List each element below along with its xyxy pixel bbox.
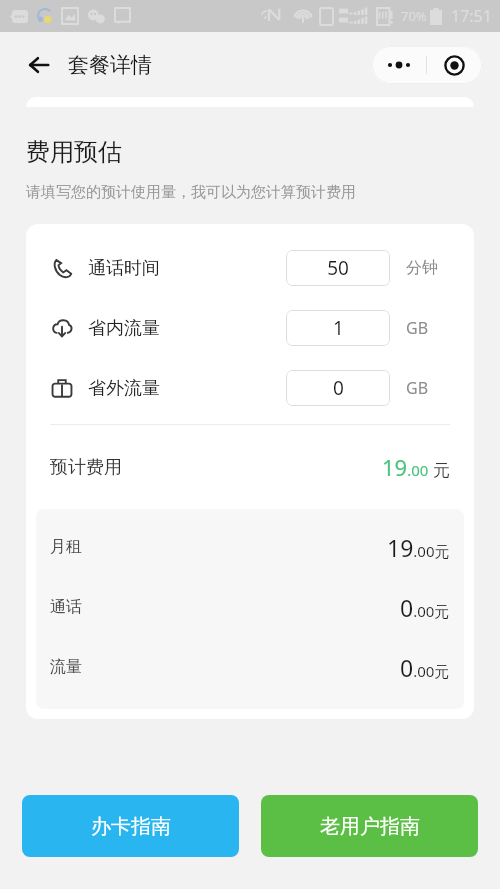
button[interactable]: Back bbox=[20, 46, 58, 84]
button[interactable]: 省外流量 bbox=[50, 358, 450, 418]
button[interactable]: Close mini program bbox=[427, 55, 482, 76]
staticText: 19.00 元 bbox=[382, 452, 450, 482]
staticText: 省内流量 bbox=[88, 317, 160, 340]
staticText: 请填写您的预计使用量，我可以为您计算预计费用 bbox=[26, 183, 356, 202]
staticText: 1 bbox=[333, 315, 344, 341]
staticText: 70% bbox=[401, 7, 427, 25]
staticText: GB bbox=[406, 377, 429, 399]
button[interactable]: 通话时间 bbox=[50, 238, 450, 298]
button[interactable]: More options bbox=[372, 60, 426, 70]
staticText: 套餐详情 bbox=[68, 52, 152, 78]
staticText: 流量 bbox=[50, 657, 82, 677]
staticText: 通话 bbox=[50, 597, 82, 617]
staticText: 分钟 bbox=[406, 258, 438, 278]
button[interactable]: 老用户指南 bbox=[261, 795, 478, 857]
staticText: 费用预估 bbox=[26, 137, 122, 167]
staticText: 0.00元 bbox=[400, 652, 450, 683]
staticText: 通话时间 bbox=[88, 257, 160, 280]
staticText: 老用户指南 bbox=[320, 814, 420, 839]
staticText: 50 bbox=[327, 255, 349, 281]
staticText: 0.00元 bbox=[400, 592, 450, 623]
staticText: 预计费用 bbox=[50, 456, 122, 479]
staticText: 17:51 bbox=[451, 5, 492, 27]
staticText: 省外流量 bbox=[88, 377, 160, 400]
button[interactable]: 省内流量 bbox=[50, 298, 450, 358]
staticText: GB bbox=[406, 317, 429, 339]
staticText: 月租 bbox=[50, 537, 82, 557]
button[interactable]: 办卡指南 bbox=[22, 795, 239, 857]
staticText: 19.00元 bbox=[387, 532, 450, 563]
staticText: 办卡指南 bbox=[91, 814, 171, 839]
staticText: 0 bbox=[333, 375, 344, 401]
